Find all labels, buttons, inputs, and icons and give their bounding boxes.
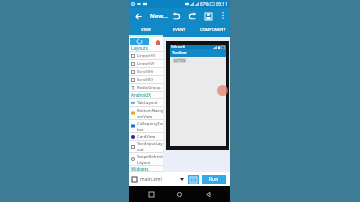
button[interactable]: COMPONENT	[196, 23, 230, 35]
staticText: Hello world	[171, 45, 185, 49]
staticText: Linear(V)	[137, 61, 155, 67]
button[interactable]: Palette	[130, 38, 149, 45]
button[interactable]: Delete	[154, 38, 162, 46]
staticText: CollapsingTool- bar	[137, 121, 163, 132]
staticText: Scroll(V)	[137, 77, 153, 83]
staticText: Layouts	[131, 45, 148, 51]
button[interactable]: Home	[173, 188, 186, 201]
button[interactable]: VIEW	[129, 23, 162, 35]
button[interactable]: Linear(V)	[129, 60, 163, 68]
button[interactable]: CollapsingTool- bar	[129, 120, 163, 133]
button[interactable]: Linear(H)	[129, 52, 163, 60]
button[interactable]: Save	[202, 10, 214, 22]
button[interactable]: BUTTON	[173, 58, 186, 63]
staticText: BottomNavigat- ionView	[137, 108, 163, 119]
staticText: BUTTON	[174, 59, 186, 63]
staticText: Scroll(H)	[137, 69, 154, 75]
staticText: Toolbar	[172, 50, 188, 56]
staticText: TextInputLay- out	[137, 141, 163, 152]
staticText: RadioGroup	[137, 85, 161, 91]
button[interactable]: Redo	[186, 10, 198, 22]
staticText: 05:11	[216, 1, 228, 7]
staticText: main.xml	[140, 176, 162, 183]
button[interactable]: Back	[202, 188, 215, 201]
button[interactable]: Scroll(V)	[129, 76, 163, 84]
staticText: Widgets	[131, 166, 149, 171]
button[interactable]: Format code	[188, 175, 199, 184]
button[interactable]: Recents	[145, 188, 158, 201]
staticText: New...	[150, 12, 168, 20]
button[interactable]: Back	[132, 10, 144, 22]
staticText: CardView	[137, 134, 156, 140]
button[interactable]: More options	[217, 10, 228, 21]
staticText: EVENT	[173, 27, 186, 32]
button[interactable]: EVENT	[162, 23, 196, 35]
staticText: COMPONENT	[200, 27, 226, 32]
button[interactable]: Run	[202, 175, 226, 184]
button[interactable]: TabLayout	[129, 99, 163, 107]
button[interactable]: Scroll(H)	[129, 68, 163, 76]
button[interactable]: Undo	[170, 10, 182, 22]
button[interactable]: RadioGroup	[129, 84, 163, 92]
staticText: TabLayout	[137, 100, 158, 106]
staticText: 67%	[200, 1, 209, 7]
staticText: Linear(H)	[137, 53, 155, 59]
staticText: Run	[209, 176, 219, 183]
button[interactable]: CardView	[129, 133, 163, 141]
button[interactable]: SwipeRefresh- Layout	[129, 153, 163, 166]
button[interactable]: TextInputLay- out	[129, 141, 163, 153]
staticText: VIEW	[141, 27, 151, 32]
staticText: AndroidX	[131, 92, 151, 98]
button[interactable]: BottomNavigat- ionView	[129, 107, 163, 120]
staticText: SwipeRefresh- Layout	[137, 154, 163, 165]
